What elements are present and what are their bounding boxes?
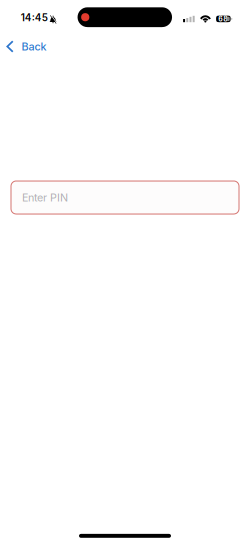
staticText: Enter PIN [22, 191, 68, 204]
staticText: Back [21, 40, 46, 53]
staticText: 68 [218, 15, 228, 23]
button[interactable]: Enter PIN [11, 181, 239, 214]
staticText: 14:45 [21, 12, 48, 23]
button[interactable]: Back [0, 33, 55, 57]
